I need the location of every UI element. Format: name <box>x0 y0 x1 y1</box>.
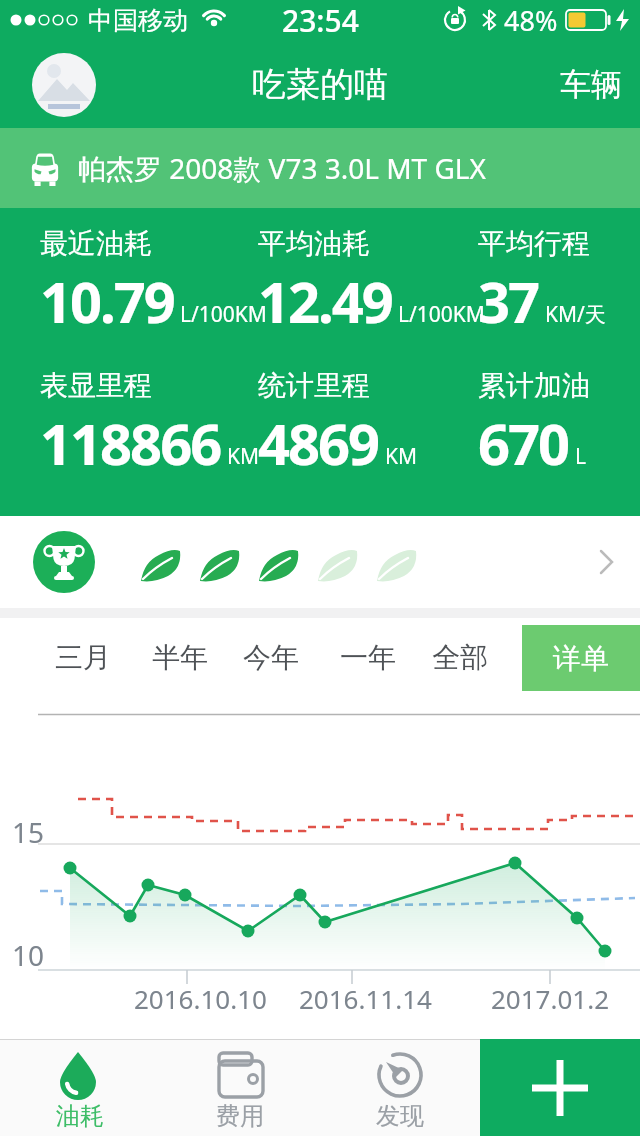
button[interactable]: 油耗 <box>0 1039 160 1136</box>
staticText: 37 <box>478 263 539 339</box>
button[interactable] <box>32 53 96 117</box>
staticText: 最近油耗 <box>40 226 152 261</box>
button[interactable]: 帕杰罗 2008款 V73 3.0L MT GLX <box>0 128 640 208</box>
staticText: 2016.11.14 <box>299 981 432 1016</box>
button[interactable]: 详单 <box>522 625 640 691</box>
staticText: 累计加油 <box>478 368 590 403</box>
staticText: 帕杰罗 2008款 V73 3.0L MT GLX <box>78 149 486 187</box>
staticText: 一年 <box>340 640 396 675</box>
button[interactable] <box>0 516 640 608</box>
button[interactable]: 费用 <box>160 1039 320 1136</box>
button[interactable]: 三月 <box>43 631 123 683</box>
staticText: L <box>575 442 587 471</box>
button[interactable]: 全部 <box>420 631 500 683</box>
staticText: 23:54 <box>282 0 359 40</box>
staticText: KM/天 <box>545 300 606 329</box>
staticText: 10.79 <box>40 263 174 339</box>
button[interactable]: 车辆 <box>550 55 640 114</box>
staticText: 4869 <box>258 405 379 481</box>
staticText: 发现 <box>376 1101 424 1131</box>
staticText: 2016.10.10 <box>134 981 267 1016</box>
staticText: L/100KM <box>180 300 267 329</box>
staticText: 全部 <box>432 640 488 675</box>
staticText: 三月 <box>55 640 111 675</box>
button[interactable]: 一年 <box>328 631 408 683</box>
staticText: 48% <box>504 2 558 39</box>
staticText: 中国移动 <box>88 5 188 36</box>
staticText: 吃菜的喵 <box>252 63 388 106</box>
staticText: KM <box>227 442 260 471</box>
button[interactable]: 发现 <box>320 1039 480 1136</box>
staticText: 平均行程 <box>478 226 590 261</box>
staticText: 费用 <box>216 1101 264 1131</box>
staticText: KM <box>385 442 418 471</box>
staticText: 12.49 <box>258 263 392 339</box>
staticText: 15 <box>12 813 45 851</box>
staticText: 半年 <box>152 640 208 675</box>
staticText: 118866 <box>40 405 221 481</box>
staticText: 今年 <box>243 640 299 675</box>
staticText: 油耗 <box>56 1101 104 1131</box>
staticText: 10 <box>12 936 45 974</box>
staticText: 表显里程 <box>40 368 152 403</box>
staticText: 670 <box>478 405 569 481</box>
staticText: 详单 <box>553 641 609 676</box>
staticText: 平均油耗 <box>258 226 370 261</box>
staticText: 2017.01.2 <box>491 981 610 1016</box>
button[interactable]: 半年 <box>140 631 220 683</box>
button[interactable]: 今年 <box>231 631 311 683</box>
button[interactable] <box>480 1039 640 1136</box>
staticText: 统计里程 <box>258 368 370 403</box>
staticText: L/100KM <box>398 300 485 329</box>
